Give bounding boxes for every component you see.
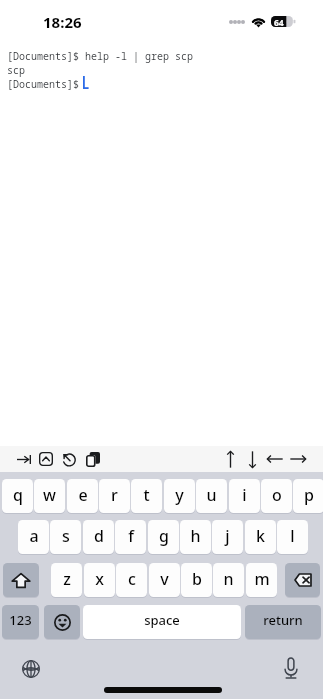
staticText: k xyxy=(256,525,265,547)
button[interactable]: q xyxy=(2,479,33,513)
button[interactable]: l xyxy=(277,520,308,554)
button[interactable]: return xyxy=(245,605,321,639)
button[interactable]: w xyxy=(34,479,65,513)
staticText: m xyxy=(254,568,270,590)
staticText: 18:26 xyxy=(43,12,82,32)
staticText: z xyxy=(63,568,71,590)
button[interactable]: 123 xyxy=(2,605,39,639)
button[interactable]: i xyxy=(229,479,260,513)
button[interactable]: x xyxy=(84,563,115,597)
staticText: x xyxy=(95,568,104,590)
button[interactable]: History xyxy=(58,446,80,472)
staticText: scp xyxy=(7,63,25,77)
button[interactable]: p xyxy=(293,479,323,513)
staticText: j xyxy=(225,525,230,547)
staticText: c xyxy=(128,568,136,590)
staticText: n xyxy=(223,568,234,590)
staticText: u xyxy=(206,484,217,506)
button[interactable]: Dictate xyxy=(281,656,301,680)
button[interactable]: n xyxy=(213,563,244,597)
staticText: s xyxy=(62,525,70,547)
staticText: d xyxy=(94,525,104,547)
staticText: h xyxy=(190,525,201,547)
staticText: q xyxy=(13,484,23,506)
staticText: f xyxy=(128,525,134,547)
staticText: 123 xyxy=(9,611,32,629)
button[interactable]: e xyxy=(67,479,98,513)
button[interactable]: z xyxy=(51,563,82,597)
button[interactable]: t xyxy=(131,479,162,513)
button[interactable]: space xyxy=(83,605,241,639)
button[interactable]: Arrow left xyxy=(264,446,286,472)
button[interactable]: Change keyboard xyxy=(21,659,41,679)
staticText: b xyxy=(192,568,202,590)
button[interactable]: d xyxy=(83,520,114,554)
staticText: [Documents]$ xyxy=(7,77,79,91)
staticText: i xyxy=(242,484,247,506)
button[interactable]: Control xyxy=(35,446,57,472)
staticText: 64 xyxy=(274,17,284,28)
button[interactable]: s xyxy=(50,520,81,554)
button[interactable]: Emoji xyxy=(44,605,80,639)
button[interactable]: Arrow right xyxy=(287,446,309,472)
staticText: o xyxy=(272,484,282,506)
staticText: w xyxy=(43,484,56,506)
button[interactable]: r xyxy=(99,479,130,513)
button[interactable]: Paste xyxy=(82,446,104,472)
staticText: a xyxy=(29,525,39,547)
button[interactable]: g xyxy=(148,520,179,554)
staticText: v xyxy=(160,568,169,590)
button[interactable]: o xyxy=(261,479,292,513)
staticText: y xyxy=(175,484,184,506)
button[interactable]: c xyxy=(116,563,147,597)
staticText: r xyxy=(111,484,118,506)
button[interactable]: b xyxy=(181,563,212,597)
staticText: return xyxy=(263,611,303,629)
button[interactable]: y xyxy=(164,479,195,513)
button[interactable]: Arrow down xyxy=(241,446,263,472)
button[interactable]: f xyxy=(115,520,146,554)
staticText: [Documents]$ help -l | grep scp xyxy=(7,49,193,63)
button[interactable]: j xyxy=(212,520,243,554)
button[interactable]: v xyxy=(149,563,180,597)
button[interactable]: Arrow up xyxy=(219,446,241,472)
staticText: t xyxy=(143,484,150,506)
staticText: e xyxy=(78,484,88,506)
staticText: space xyxy=(144,611,180,629)
staticText: l xyxy=(290,525,295,547)
button[interactable]: h xyxy=(180,520,211,554)
button[interactable]: Shift xyxy=(3,563,39,597)
staticText: g xyxy=(159,525,169,547)
staticText: p xyxy=(304,484,314,506)
button[interactable]: Backspace xyxy=(285,563,320,597)
button[interactable]: a xyxy=(18,520,49,554)
button[interactable]: k xyxy=(245,520,276,554)
button[interactable]: Tab xyxy=(13,446,35,472)
button[interactable]: u xyxy=(196,479,227,513)
button[interactable]: m xyxy=(246,563,277,597)
